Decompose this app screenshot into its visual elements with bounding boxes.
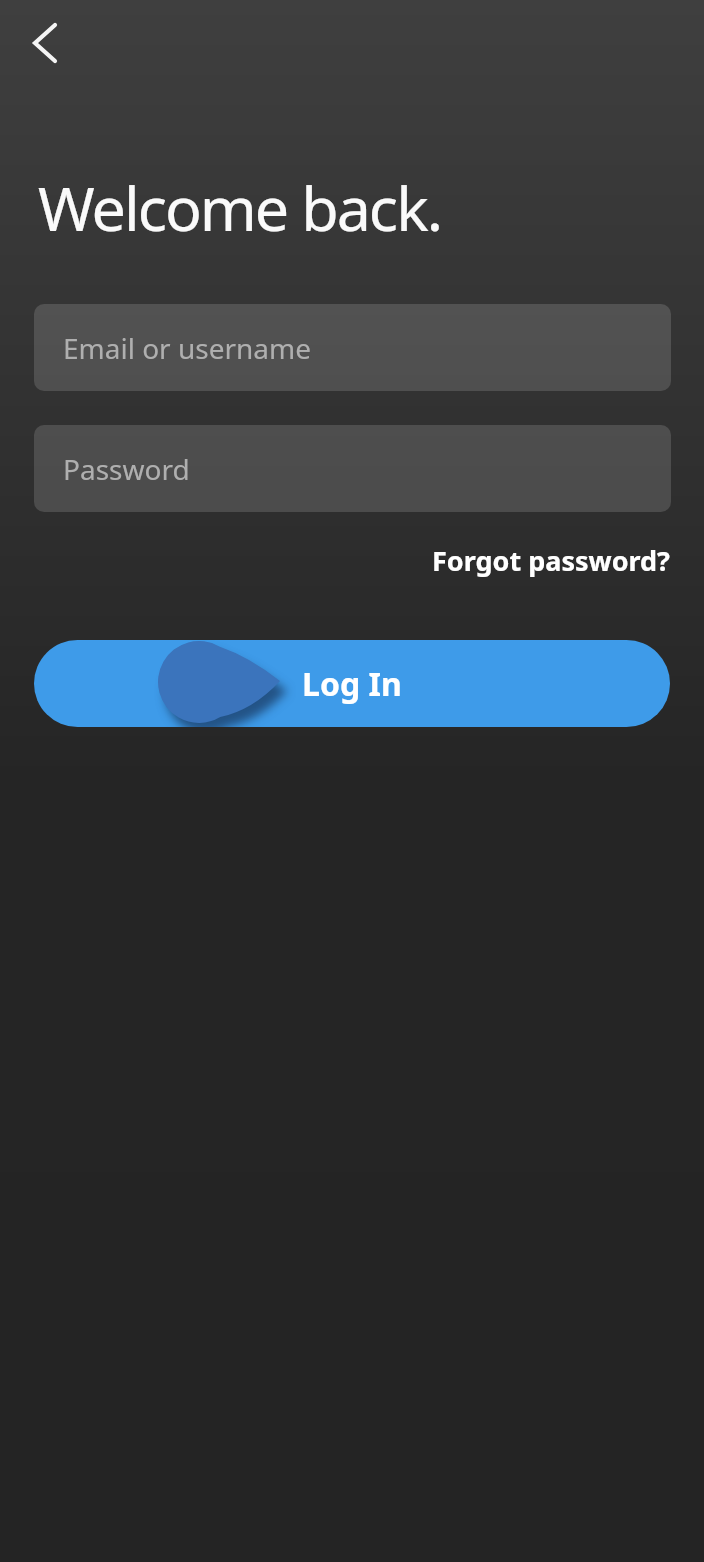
staticText: Email or username	[63, 329, 312, 367]
staticText: Welcome back.	[38, 166, 442, 249]
button[interactable]: Email or username	[34, 304, 671, 391]
button[interactable]	[19, 15, 71, 67]
button[interactable]: Forgot password?	[432, 542, 670, 579]
button[interactable]: Log In	[34, 640, 670, 727]
staticText: Password	[63, 450, 190, 488]
button[interactable]: Password	[34, 425, 671, 512]
staticText: Log In	[302, 662, 402, 706]
